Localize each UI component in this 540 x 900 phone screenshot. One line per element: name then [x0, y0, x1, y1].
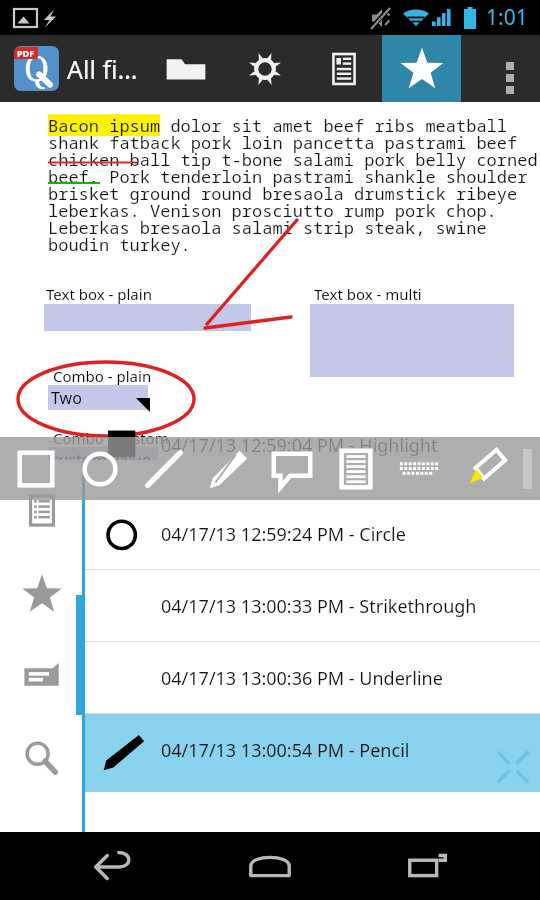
staticText: Text box - multi	[314, 284, 422, 304]
button[interactable]: Search	[11, 728, 73, 790]
staticText: 1:01	[486, 3, 528, 32]
staticText: custom value	[51, 449, 151, 471]
staticText: Text box - plain	[46, 284, 152, 304]
button[interactable]: Brightness	[225, 35, 304, 102]
button[interactable]: Bookmarks	[11, 563, 73, 625]
button[interactable]: Ellipse	[68, 437, 132, 500]
button[interactable]: Keyboard	[388, 437, 452, 500]
button[interactable]: Rectangle	[4, 437, 68, 500]
button[interactable]: 04/17/13 13:00:33 PM - Strikethrough	[85, 570, 540, 642]
staticText: Q	[24, 46, 50, 90]
button[interactable]: Back	[68, 832, 158, 900]
button[interactable]: Note	[260, 437, 324, 500]
button[interactable]: Bookmarks	[382, 35, 461, 102]
button[interactable]: Recents	[383, 832, 473, 900]
button[interactable]: Highlighter	[452, 437, 516, 500]
staticText: Combo - plain	[53, 366, 152, 386]
button[interactable]: Q	[14, 35, 138, 102]
staticText: Bacon ipsum dolor sit amet beef ribs mea…	[48, 114, 538, 256]
staticText: 04/17/13 13:00:33 PM - Strikethrough	[161, 594, 477, 619]
button[interactable]: Annotations	[11, 646, 73, 708]
button[interactable]: Outline	[11, 480, 73, 542]
button[interactable]: 04/17/13 12:59:24 PM - Circle	[85, 498, 540, 570]
button[interactable]: Text	[324, 437, 388, 500]
button[interactable]: Folder	[146, 35, 225, 102]
button[interactable]: Pencil	[196, 437, 260, 500]
button[interactable]: 04/17/13 13:00:36 PM - Underline	[85, 642, 540, 714]
button[interactable]: Line	[132, 437, 196, 500]
button[interactable]: 04/17/13 13:00:54 PM - Pencil	[85, 714, 540, 792]
staticText: All fi...	[67, 52, 138, 86]
staticText: 04/17/13 13:00:36 PM - Underline	[161, 666, 443, 691]
button[interactable]: 04/17/13 12:59:04 PM - Highlight	[85, 460, 540, 498]
staticText: 04/17/13 13:00:54 PM - Pencil	[161, 738, 410, 763]
button[interactable]: More options	[480, 35, 540, 102]
staticText: Combo - custom	[53, 428, 169, 448]
button[interactable]: Home	[225, 832, 315, 900]
staticText: PDF	[17, 47, 35, 59]
staticText: Two	[51, 387, 82, 409]
button[interactable]: Pages	[304, 35, 383, 102]
staticText: 04/17/13 12:59:24 PM - Circle	[161, 522, 406, 547]
staticText: 04/17/13 12:59:04 PM - Highlight	[161, 433, 438, 458]
